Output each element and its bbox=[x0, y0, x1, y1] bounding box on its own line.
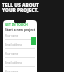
staticText: Start a new project bbox=[5, 28, 35, 32]
button[interactable]: Your name bbox=[5, 70, 35, 72]
staticText: Your name bbox=[5, 70, 19, 72]
staticText: Your name bbox=[5, 34, 19, 38]
staticText: TELL US ABOUT YOUR PROJECT. bbox=[2, 2, 39, 13]
staticText: Email address bbox=[5, 61, 22, 65]
button[interactable]: Your name bbox=[5, 34, 35, 40]
button[interactable]: Email address bbox=[5, 43, 35, 49]
staticText: GET IN TOUCH bbox=[5, 23, 28, 27]
button[interactable]: Your name bbox=[5, 52, 35, 58]
staticText: Your name bbox=[5, 52, 19, 56]
staticText: Email address bbox=[5, 43, 22, 47]
button[interactable]: Email address bbox=[5, 61, 35, 67]
